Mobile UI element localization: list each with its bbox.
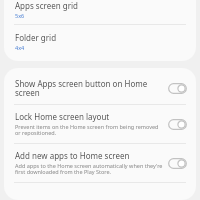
staticText: Add new apps to Home screen	[15, 150, 130, 161]
staticText: Folder grid	[15, 32, 57, 43]
staticText: Prevent items on the Home screen from be…	[15, 123, 163, 137]
button[interactable]: Add new apps to Home screen	[168, 158, 187, 169]
button[interactable]: Add new apps to Home screen	[4, 144, 196, 182]
staticText: Show Apps screen button on Home screen	[15, 78, 163, 99]
button[interactable]: Lock Home screen layout	[4, 105, 196, 143]
button[interactable]: Folder grid	[4, 25, 196, 61]
button[interactable]: Lock Home screen layout	[168, 119, 187, 130]
staticText: Lock Home screen layout	[15, 111, 110, 122]
button[interactable]: Apps screen grid	[4, 0, 196, 24]
button[interactable]: Show Apps screen button on Home screen	[168, 83, 187, 94]
button[interactable]: Show Apps screen button on Home screen	[4, 74, 196, 104]
staticText: 5x6	[15, 12, 25, 19]
staticText: Add apps to the Home screen automaticall…	[15, 162, 163, 176]
staticText: 4x4	[15, 44, 25, 51]
staticText: Apps screen grid	[15, 0, 78, 11]
